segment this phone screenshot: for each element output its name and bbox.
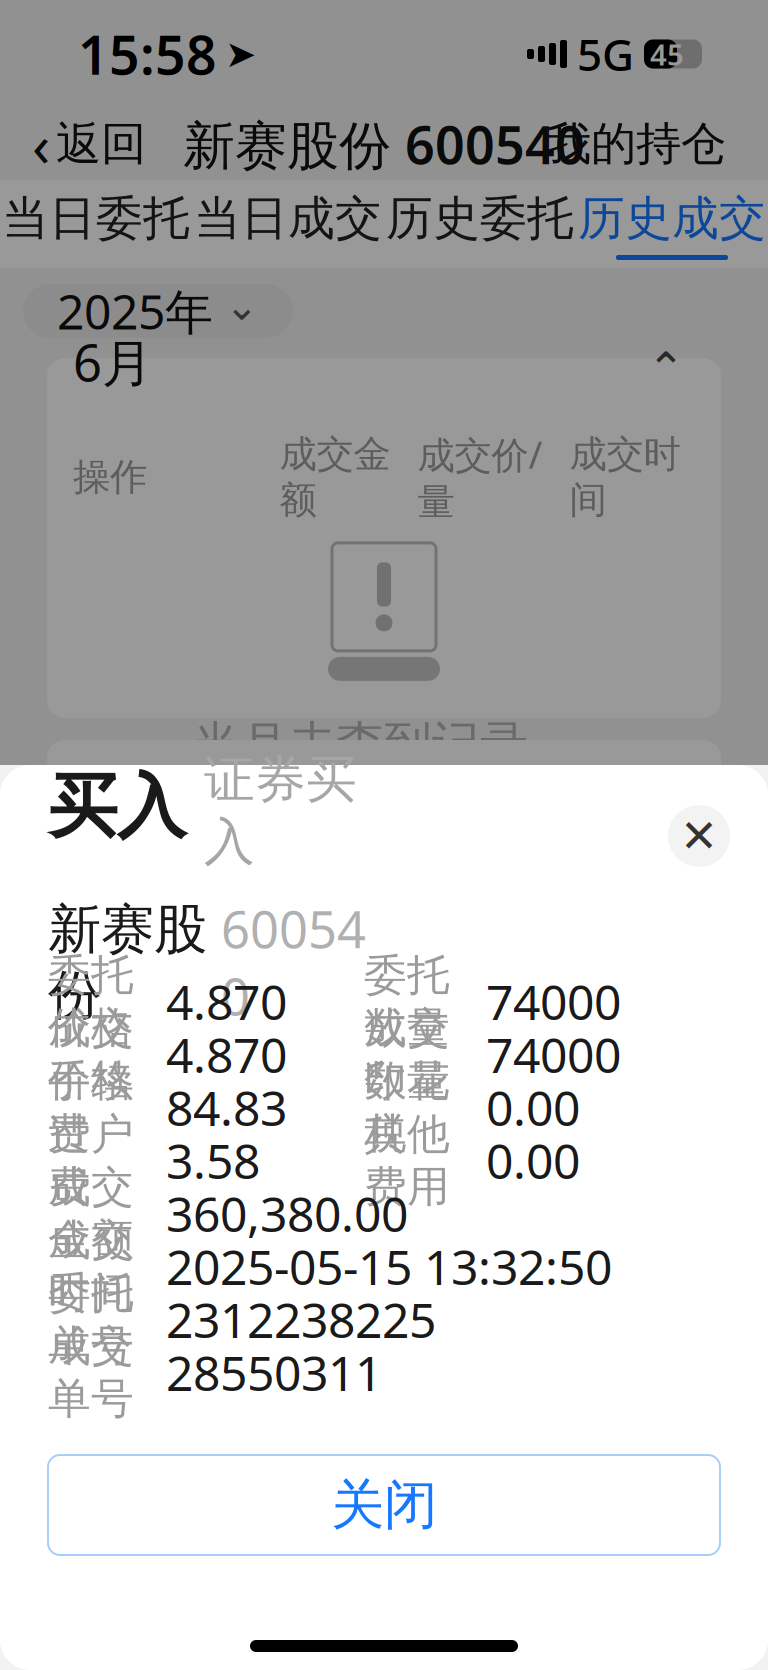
- staticText: 证券买入: [204, 748, 357, 873]
- staticText: 28550311: [166, 1341, 382, 1404]
- staticText: 成交价/量: [417, 429, 542, 525]
- staticText: 6月: [73, 328, 153, 395]
- button[interactable]: Collapse: [637, 329, 695, 395]
- button[interactable]: 2025年: [23, 284, 293, 338]
- staticText: ⌄: [225, 283, 259, 329]
- staticText: 委托价格: [48, 949, 134, 1054]
- staticText: 成交时间: [48, 1214, 134, 1319]
- staticText: 600540: [221, 895, 366, 1029]
- staticText: 74000: [486, 1023, 621, 1086]
- staticText: 4.870: [166, 1023, 287, 1086]
- staticText: 45: [650, 34, 684, 73]
- staticText: 委托单号: [48, 1267, 134, 1372]
- button[interactable]: 当日委托: [0, 180, 192, 268]
- staticText: 返回: [56, 116, 146, 172]
- staticText: 历史成交: [578, 190, 766, 247]
- staticText: 当月未查到记录～: [192, 715, 576, 774]
- staticText: 4.870: [166, 970, 287, 1033]
- staticText: 新赛股份: [48, 897, 207, 1028]
- staticText: ‹: [32, 105, 50, 183]
- staticText: 2025-05-15 13:32:50: [166, 1235, 612, 1298]
- button[interactable]: ‹: [22, 93, 156, 195]
- staticText: 成交金额: [279, 431, 390, 523]
- staticText: 2312238225: [166, 1288, 436, 1351]
- staticText: ✕: [680, 810, 718, 862]
- staticText: 我的持仓: [546, 116, 726, 172]
- staticText: 0.00: [486, 1076, 580, 1139]
- staticText: 新赛股份 600540: [183, 109, 585, 179]
- staticText: 手续费: [48, 1055, 134, 1160]
- button[interactable]: 关闭: [48, 1455, 720, 1555]
- staticText: 3.58: [166, 1129, 260, 1192]
- button[interactable]: 我的持仓: [536, 104, 736, 184]
- staticText: 买入: [48, 764, 186, 849]
- button[interactable]: Close: [668, 805, 730, 867]
- staticText: 15:58: [78, 19, 217, 89]
- staticText: 5G: [577, 25, 634, 83]
- staticText: 2025年: [57, 279, 213, 343]
- staticText: 成交数量: [364, 1002, 450, 1107]
- staticText: 其他费用: [364, 1108, 450, 1213]
- staticText: 委托数量: [364, 949, 450, 1054]
- staticText: 印花税: [364, 1055, 450, 1160]
- staticText: 成交单号: [48, 1320, 134, 1425]
- button[interactable]: 历史委托: [384, 180, 576, 268]
- staticText: 0.00: [486, 1129, 580, 1192]
- staticText: 历史委托: [386, 190, 574, 247]
- staticText: 当日成交: [194, 190, 382, 247]
- staticText: 84.83: [166, 1076, 287, 1139]
- staticText: 成交时间: [569, 431, 680, 523]
- staticText: ➤: [225, 33, 256, 75]
- staticText: 操作: [73, 454, 147, 500]
- staticText: 当日委托: [2, 190, 190, 247]
- staticText: 5月: [73, 763, 153, 831]
- staticText: 360,380.00: [166, 1182, 408, 1245]
- staticText: 成交价格: [48, 1002, 134, 1107]
- staticText: 关闭: [331, 1472, 437, 1538]
- staticText: 成交金额: [48, 1161, 134, 1266]
- button[interactable]: 历史成交: [576, 180, 768, 268]
- staticText: 过户费: [48, 1108, 134, 1213]
- button[interactable]: 当日成交: [192, 180, 384, 268]
- staticText: 74000: [486, 970, 621, 1033]
- staticText: ⌃: [647, 343, 685, 395]
